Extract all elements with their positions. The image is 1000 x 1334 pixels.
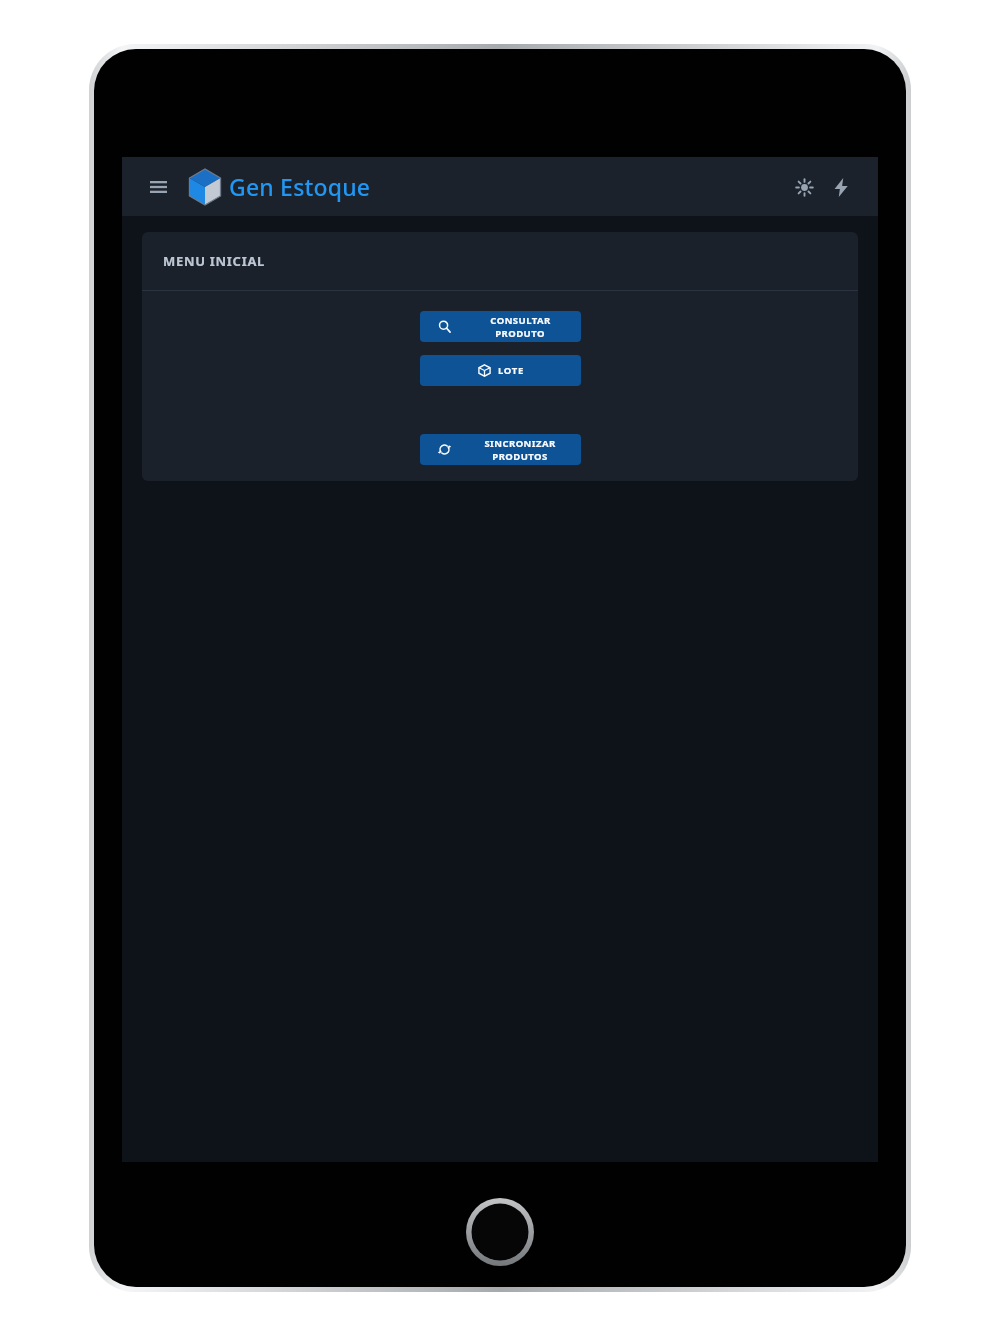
staticText: MENU INICIAL bbox=[163, 252, 266, 270]
staticText: LOTE bbox=[498, 364, 524, 377]
button[interactable]: Open navigation menu bbox=[143, 172, 173, 202]
staticText: SINCRONIZAR bbox=[484, 437, 556, 450]
button[interactable]: LOTE bbox=[420, 355, 581, 386]
staticText: Gen Estoque bbox=[229, 171, 371, 202]
button[interactable]: Quick actions bbox=[826, 172, 856, 202]
button[interactable]: SINCRONIZAR bbox=[420, 434, 581, 465]
button[interactable]: Home bbox=[466, 1198, 534, 1266]
button[interactable]: CONSULTAR bbox=[420, 311, 581, 342]
staticText: PRODUTOS bbox=[492, 450, 548, 463]
staticText: CONSULTAR bbox=[490, 314, 551, 327]
staticText: PRODUTO bbox=[495, 327, 545, 340]
button[interactable]: Toggle theme bbox=[789, 172, 819, 202]
